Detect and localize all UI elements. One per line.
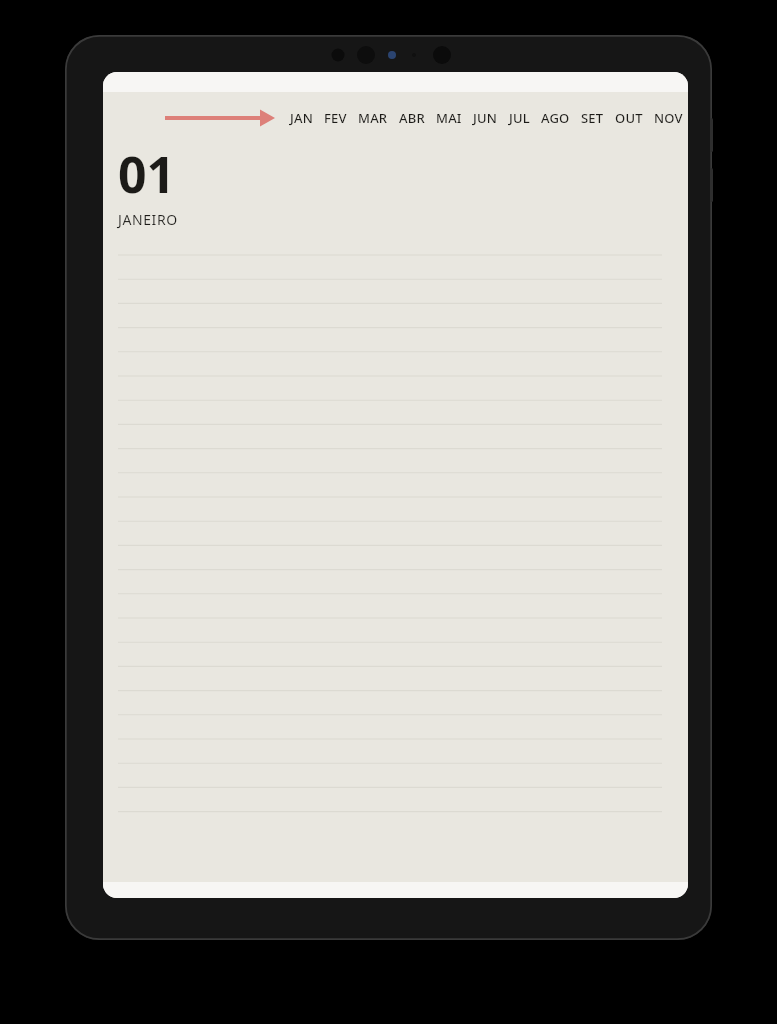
button[interactable]: MAR	[357, 106, 389, 130]
button[interactable]: ABR	[398, 106, 426, 130]
button[interactable]: AGO	[540, 106, 571, 130]
button[interactable]: NOV	[653, 106, 684, 130]
staticText: JUL	[509, 109, 530, 127]
staticText: OUT	[615, 109, 643, 127]
staticText: JUN	[473, 109, 498, 127]
button[interactable]: SET	[580, 106, 605, 130]
staticText: JAN	[290, 109, 313, 127]
button[interactable]: JUN	[472, 106, 499, 130]
staticText: MAR	[358, 109, 388, 127]
button[interactable]: JUL	[508, 106, 531, 130]
button[interactable]: FEV	[323, 106, 348, 130]
button[interactable]: JAN	[289, 106, 314, 130]
button[interactable]: OUT	[614, 106, 644, 130]
staticText: NOV	[654, 109, 683, 127]
staticText: SET	[581, 109, 604, 127]
staticText: FEV	[324, 109, 347, 127]
button[interactable]: MAI	[435, 106, 463, 130]
staticText: AGO	[541, 109, 570, 127]
staticText: JANEIRO	[118, 210, 178, 229]
staticText: 01	[118, 140, 176, 208]
staticText: MAI	[436, 109, 462, 127]
staticText: ABR	[399, 109, 425, 127]
